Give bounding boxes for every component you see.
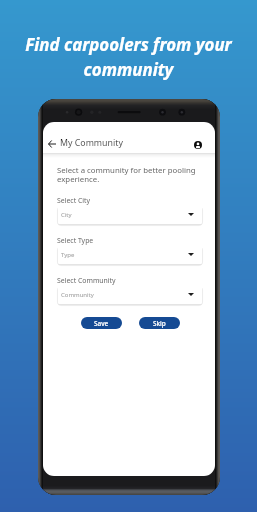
button[interactable]: Account [190,137,206,153]
staticText: Type [61,251,75,259]
staticText: Select Community [57,276,116,285]
staticText: My Community [60,137,123,149]
button[interactable]: Community [58,286,202,304]
staticText: Skip [153,319,166,328]
staticText: Save [94,319,109,328]
staticText: Find carpoolers from your community [6,33,251,81]
staticText: City [61,211,72,219]
staticText: Select City [57,196,91,205]
staticText: Select Type [57,236,94,245]
button[interactable]: Skip [139,317,180,329]
button[interactable]: City [58,206,202,224]
staticText: Select a community for better pooling ex… [57,165,209,184]
button[interactable]: Save [81,317,122,329]
button[interactable]: Back [46,136,62,152]
button[interactable]: Type [58,246,202,264]
staticText: Community [61,291,94,299]
